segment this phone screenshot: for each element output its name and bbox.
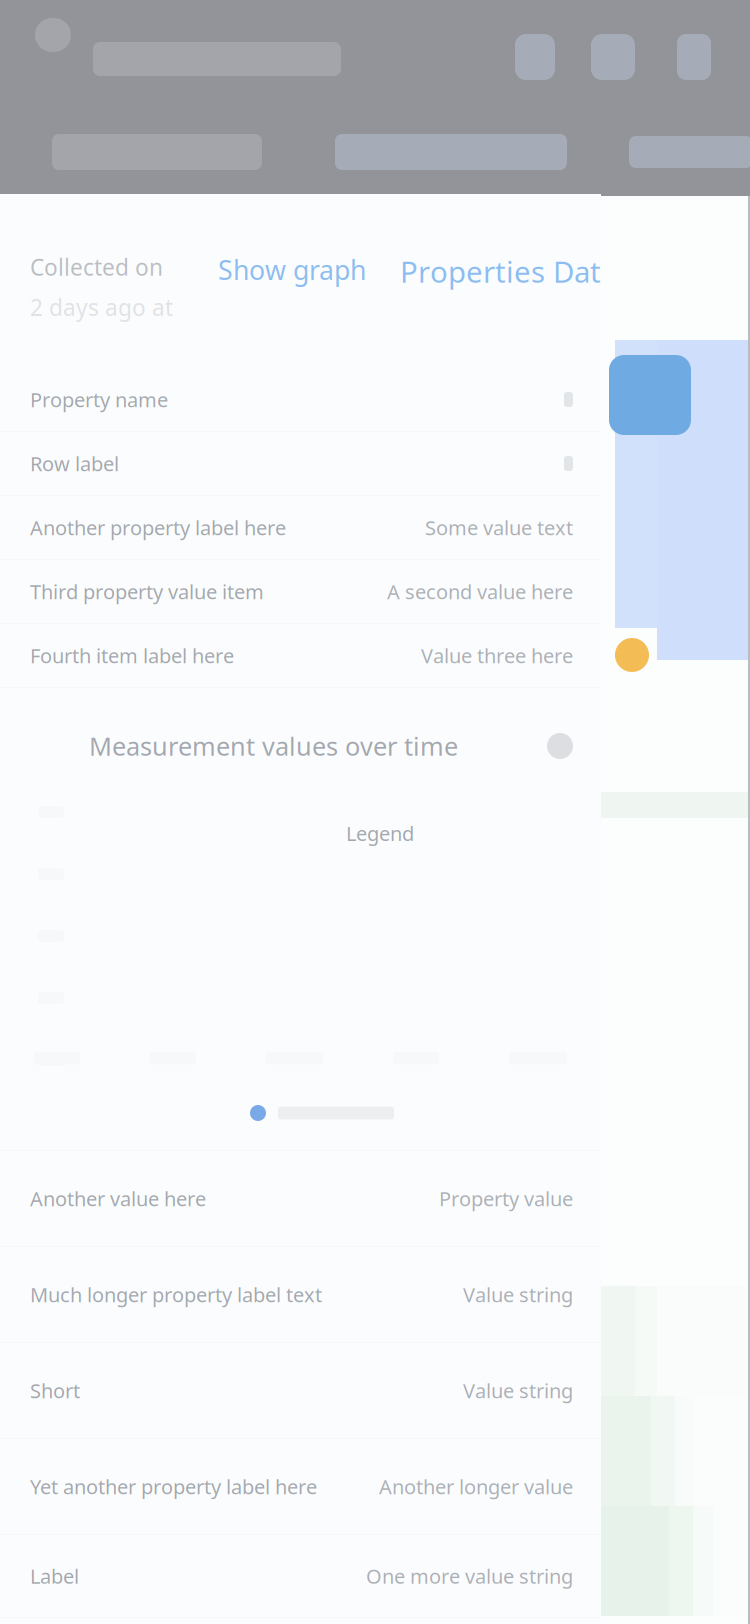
button[interactable]: Third property value item	[0, 560, 601, 624]
staticText: Some value text	[425, 514, 573, 541]
button[interactable]: Row label	[0, 432, 601, 496]
staticText: Short	[30, 1377, 80, 1404]
staticText: Show graph	[218, 252, 366, 287]
staticText: Property name	[30, 386, 168, 413]
staticText: Value string	[463, 1377, 573, 1404]
button[interactable]: Chart options	[547, 733, 573, 759]
staticText: Collected on	[30, 252, 163, 282]
button[interactable]: Bookmarks	[591, 34, 635, 80]
staticText: A second value here	[387, 578, 573, 605]
staticText: Properties Databases	[400, 252, 696, 291]
staticText: Another value here	[30, 1185, 206, 1212]
button[interactable]: Short	[0, 1343, 601, 1439]
button[interactable]: Tabs	[677, 34, 711, 80]
button[interactable]: Properties Databases	[400, 252, 696, 291]
button[interactable]: Another property label here	[0, 496, 601, 560]
staticText: Third property value item	[30, 578, 264, 605]
staticText: Another longer value	[379, 1473, 573, 1500]
button[interactable]: Show graph	[218, 252, 366, 287]
button[interactable]: Property name	[0, 368, 601, 432]
staticText: Property value	[439, 1185, 573, 1212]
staticText: Value three here	[421, 642, 573, 669]
button[interactable]: Fourth item label here	[0, 624, 601, 688]
staticText: Measurement values over time	[89, 729, 458, 763]
staticText: Row label	[30, 450, 119, 477]
staticText: Yet another property label here	[30, 1473, 317, 1500]
staticText: Legend	[346, 820, 414, 847]
button[interactable]: Another value here	[0, 1151, 601, 1247]
staticText: 2 days ago at	[30, 292, 173, 322]
staticText: Value string	[463, 1281, 573, 1308]
staticText: Label	[30, 1563, 79, 1589]
staticText: Another property label here	[30, 514, 286, 541]
staticText: Much longer property label text	[30, 1281, 322, 1308]
staticText: Fourth item label here	[30, 642, 234, 669]
button[interactable]: Label	[0, 1535, 601, 1618]
button[interactable]: Much longer property label text	[0, 1247, 601, 1343]
staticText: One more value string	[366, 1563, 573, 1589]
button[interactable]: Yet another property label here	[0, 1439, 601, 1535]
button[interactable]: Share	[515, 34, 555, 80]
